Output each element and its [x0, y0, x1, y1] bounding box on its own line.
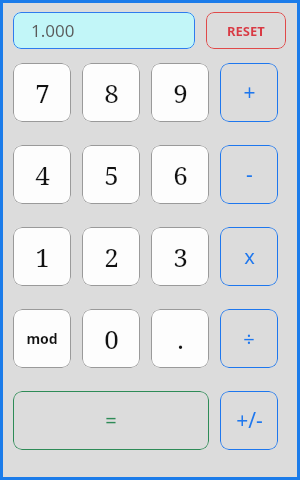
staticText: 1 — [35, 239, 50, 274]
button[interactable]: Toggle sign — [220, 391, 278, 450]
button[interactable]: 8 — [82, 63, 140, 122]
staticText: 2 — [104, 239, 119, 274]
staticText: ÷ — [243, 325, 255, 352]
button[interactable]: 0 — [82, 309, 140, 368]
button[interactable]: 6 — [151, 145, 209, 204]
staticText: +/- — [236, 406, 263, 435]
staticText: 5 — [104, 157, 119, 192]
staticText: RESET — [227, 22, 265, 40]
button[interactable]: 9 — [151, 63, 209, 122]
button[interactable]: 3 — [151, 227, 209, 286]
staticText: 0 — [104, 321, 119, 356]
button[interactable]: RESET — [206, 12, 286, 49]
staticText: . — [177, 321, 184, 356]
staticText: mod — [26, 329, 58, 348]
button[interactable]: Minus — [220, 145, 278, 204]
button[interactable]: 1.000 — [13, 12, 195, 49]
staticText: + — [243, 78, 256, 107]
staticText: 4 — [35, 157, 50, 192]
button[interactable]: Plus — [220, 63, 278, 122]
staticText: 3 — [173, 239, 188, 274]
button[interactable]: mod — [13, 309, 71, 368]
staticText: - — [246, 160, 253, 189]
button[interactable]: 4 — [13, 145, 71, 204]
button[interactable]: 2 — [82, 227, 140, 286]
button[interactable]: 1 — [13, 227, 71, 286]
staticText: 1.000 — [31, 19, 75, 42]
staticText: 7 — [35, 75, 50, 110]
staticText: 9 — [173, 75, 188, 110]
staticText: = — [105, 407, 117, 434]
button[interactable]: . — [151, 309, 209, 368]
staticText: x — [244, 243, 255, 270]
button[interactable]: Multiply — [220, 227, 278, 286]
button[interactable]: 5 — [82, 145, 140, 204]
button[interactable]: Divide — [220, 309, 278, 368]
staticText: 8 — [104, 75, 119, 110]
button[interactable]: 7 — [13, 63, 71, 122]
button[interactable]: Equals — [13, 391, 209, 450]
staticText: 6 — [173, 157, 188, 192]
